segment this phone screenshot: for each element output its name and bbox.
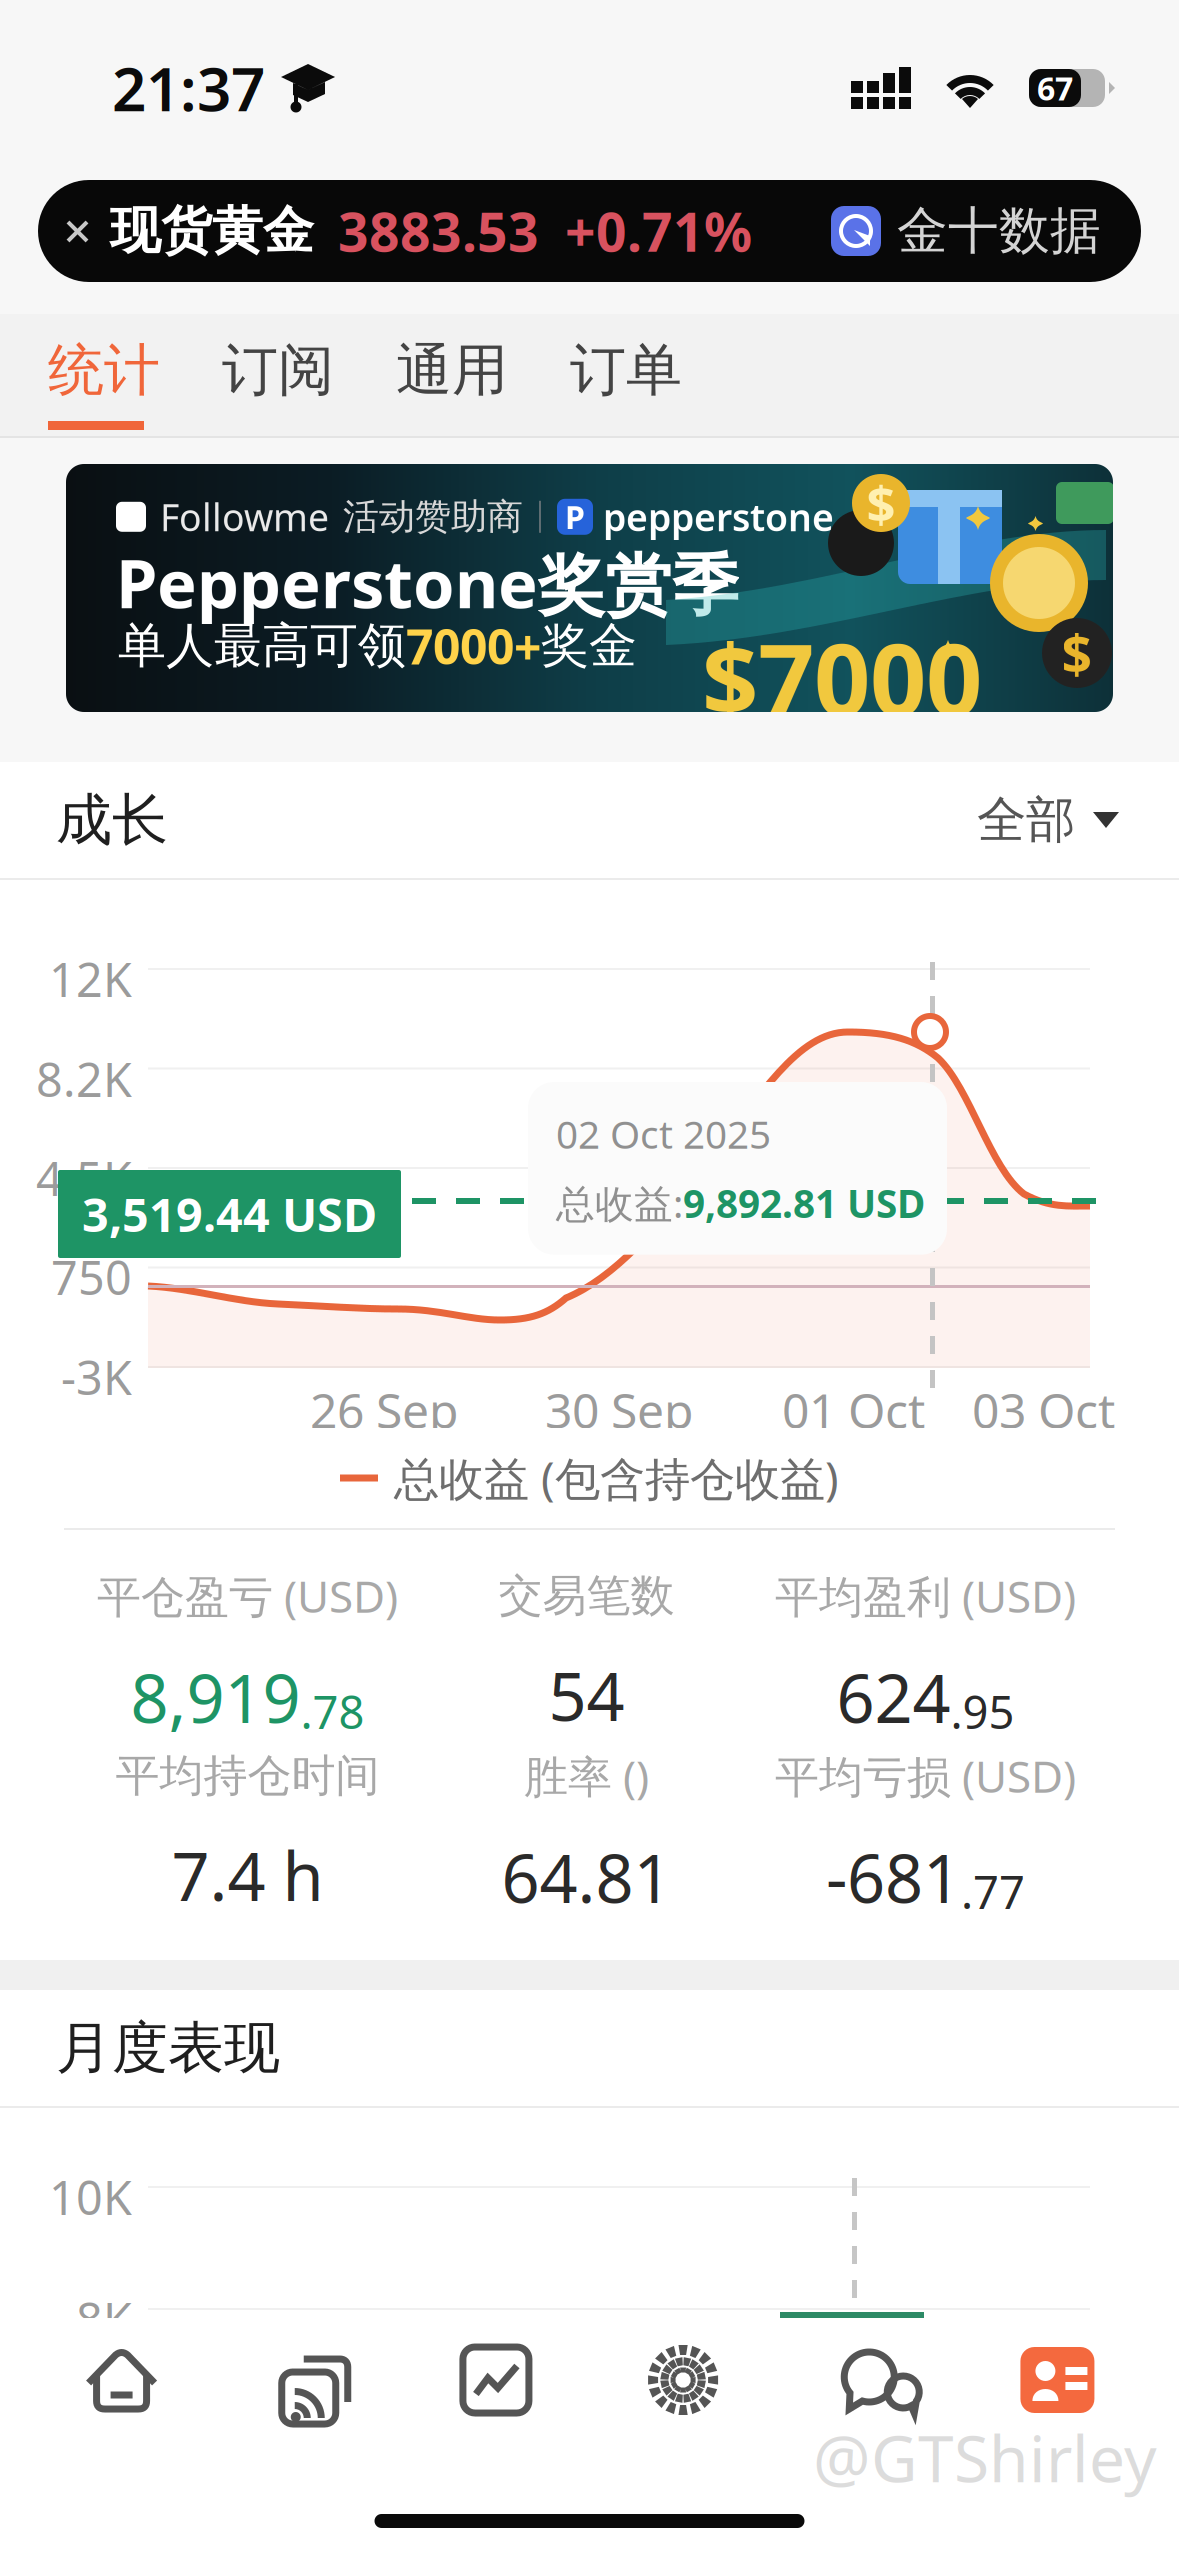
staticText: 订单 [570,336,682,405]
staticText: pepperstone [603,492,834,542]
staticText: 02 Oct 2025 [556,1108,771,1159]
staticText: 平均亏损 (USD) [775,1746,1076,1805]
staticText: 交易笔数 [498,1569,674,1623]
staticText: $ [866,469,895,537]
staticText: Followme [160,492,329,542]
staticText: .78 [300,1681,364,1741]
staticText: 活动赞助商 [343,495,523,539]
staticText: -681 [826,1833,961,1921]
staticText: 7.4 h [171,1831,323,1919]
staticText: 10K [49,2166,132,2228]
staticText: 通用 [396,336,508,405]
staticText: 9,892.81 USD [683,1177,925,1229]
staticText: @GTShirley [813,2415,1157,2500]
staticText: 03 Oct [972,1378,1115,1442]
button[interactable]: 订阅 [222,314,396,436]
button[interactable]: 统计 [48,314,222,436]
staticText: 月度表现 [56,2014,280,2082]
button[interactable]: Discover [589,2342,777,2418]
button[interactable]: Close [38,180,110,282]
staticText: Pepperstone奖赏季 [116,538,739,627]
staticText: 64.81 [501,1833,671,1921]
staticText: 平仓盈亏 (USD) [97,1566,398,1625]
staticText: .95 [950,1681,1014,1741]
staticText: 7000+ [406,614,541,678]
staticText: 01 Oct [782,1378,925,1442]
staticText: -3K [61,1346,132,1408]
staticText: 4.5K [36,1147,132,1209]
staticText: 54 [548,1651,624,1739]
staticText: P [565,495,585,538]
staticText: 全部 [977,790,1075,850]
button[interactable]: Home [28,2346,215,2414]
button[interactable]: 通用 [396,314,570,436]
staticText: 单人最高可领 [118,616,406,675]
staticText: 金十数据 [897,200,1101,262]
button[interactable]: 全部 [977,790,1119,850]
staticText: 8,919 [130,1653,300,1741]
staticText: +0.71% [565,196,752,266]
staticText: 8.2K [36,1048,132,1110]
staticText: 现货黄金 [110,200,314,262]
button[interactable]: Feed [215,2345,402,2415]
staticText: 平均盈利 (USD) [775,1566,1076,1625]
staticText: 平均持仓时间 [115,1749,379,1803]
staticText: $7000 [702,612,982,743]
staticText: 总收益: [556,1177,683,1229]
staticText: 67 [1037,67,1073,109]
staticText: 21:37 [112,48,265,128]
staticText: 3,519.44 USD [82,1183,377,1245]
staticText: 胜率 () [524,1746,649,1805]
staticText: 订阅 [222,336,334,405]
staticText: 8K [76,2288,132,2350]
staticText: 统计 [48,336,160,405]
staticText: 3883.53 [338,196,539,266]
button[interactable]: Pepperstone 奖赏季 广告 [0,464,1179,712]
staticText: 30 Sep [545,1378,694,1442]
button[interactable]: 订单 [570,314,744,436]
staticText: 624 [836,1653,950,1741]
staticText: 奖金 [541,616,637,675]
button[interactable]: Profile [964,2347,1151,2413]
staticText: 总收益 (包含持仓收益) [394,1448,839,1508]
staticText: $ [1061,618,1092,688]
staticText: 成长 [56,786,168,854]
staticText: 12K [49,948,132,1010]
staticText: .77 [961,1861,1025,1921]
staticText: 26 Sep [310,1378,459,1442]
button[interactable]: Markets [402,2347,589,2413]
button[interactable]: Messages [777,2346,964,2414]
staticText: 750 [51,1246,132,1308]
